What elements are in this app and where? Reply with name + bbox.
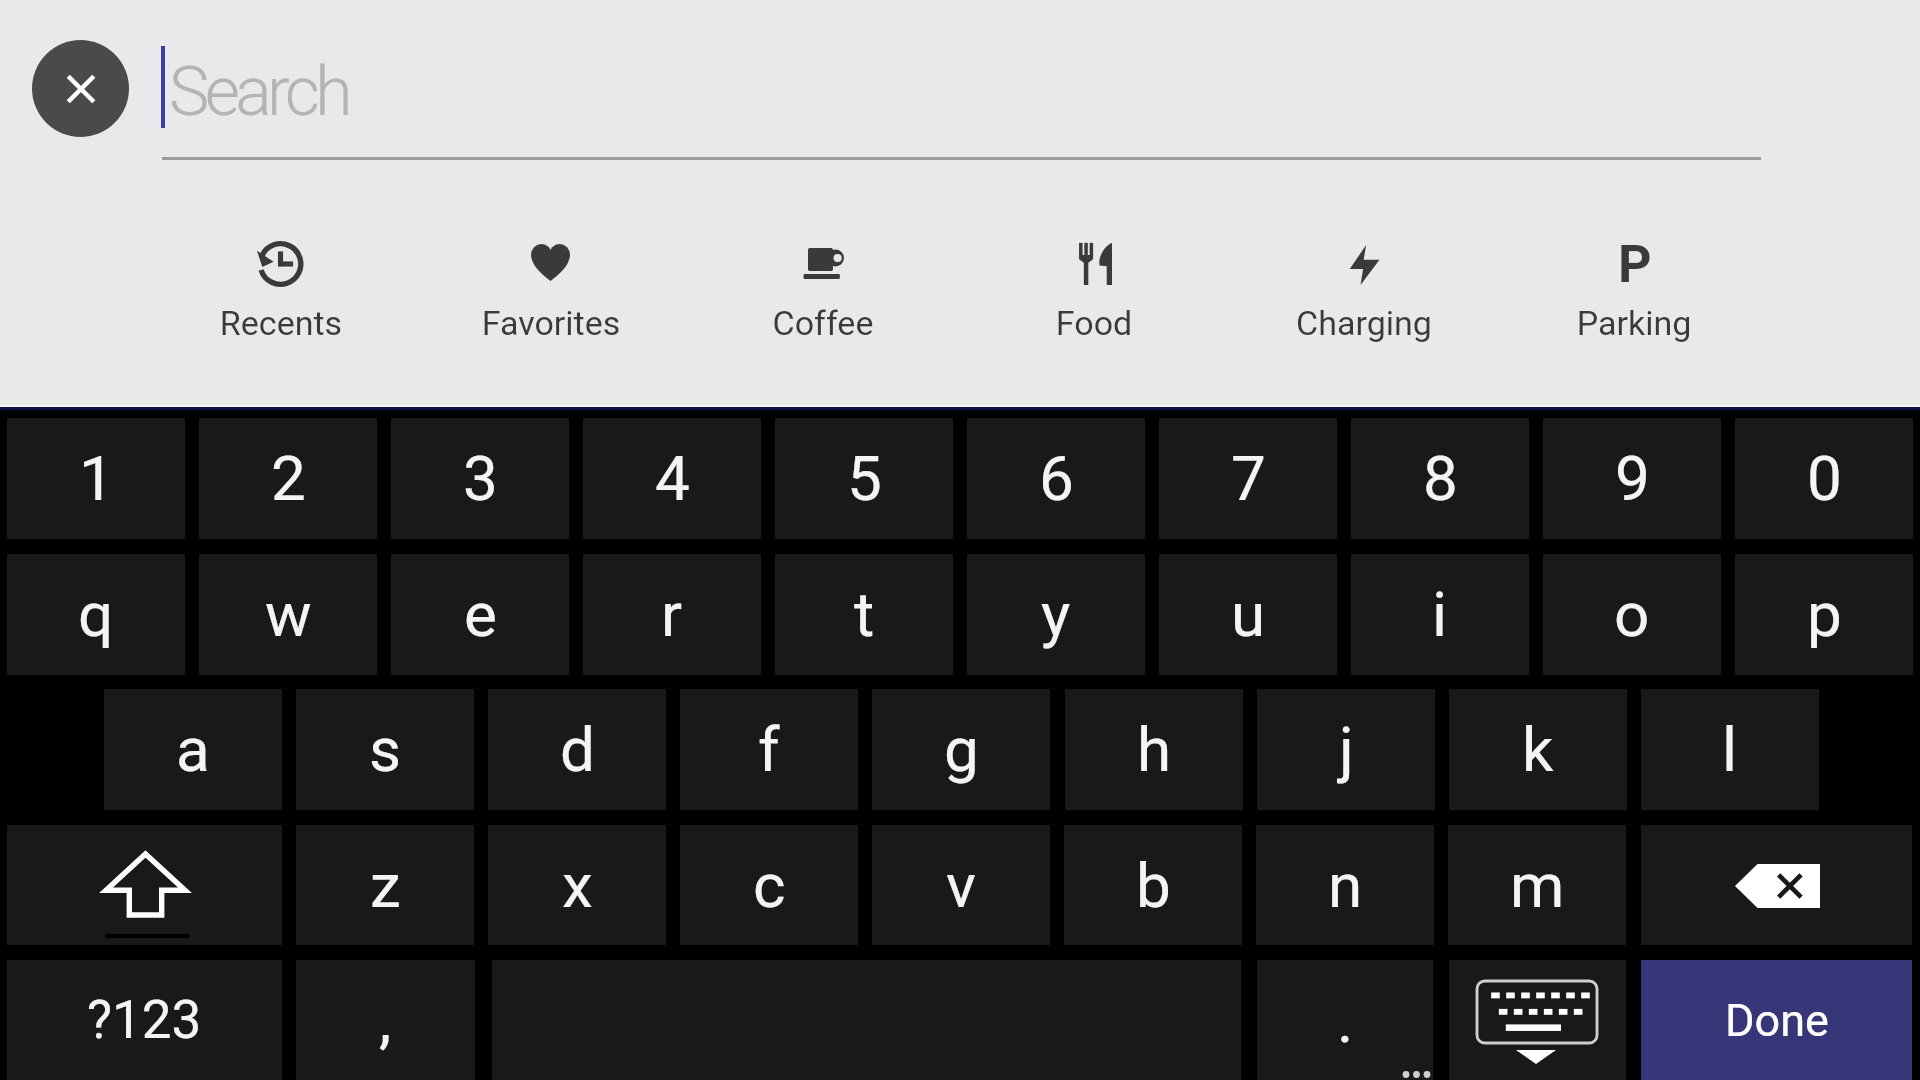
button[interactable]: n <box>1256 825 1434 945</box>
staticText: f <box>758 713 780 786</box>
button[interactable]: , <box>296 960 475 1080</box>
staticText: b <box>1136 849 1171 922</box>
staticText: i <box>1432 578 1448 651</box>
button[interactable]: f <box>680 689 858 810</box>
staticText: 6 <box>1039 442 1074 515</box>
staticText: n <box>1328 849 1363 922</box>
staticText: Favorites <box>421 303 681 343</box>
staticText: . <box>1337 984 1354 1057</box>
button[interactable]: v <box>872 825 1050 945</box>
staticText: w <box>265 578 312 651</box>
staticText: k <box>1522 713 1554 786</box>
button[interactable]: 9 <box>1543 418 1721 539</box>
button[interactable]: c <box>680 825 858 945</box>
button[interactable]: P <box>1504 233 1764 351</box>
staticText: P <box>1618 234 1652 282</box>
button[interactable]: y <box>967 554 1145 675</box>
button[interactable]: Backspace <box>1641 825 1912 945</box>
staticText: a <box>176 713 210 786</box>
staticText: Coffee <box>693 303 953 343</box>
button[interactable]: ?123 <box>7 960 282 1080</box>
button[interactable]: Favorites <box>421 233 681 351</box>
staticText: Food <box>964 303 1224 343</box>
button[interactable]: u <box>1159 554 1337 675</box>
staticText: r <box>661 578 683 651</box>
button[interactable]: 4 <box>583 418 761 539</box>
staticText: h <box>1137 713 1172 786</box>
button[interactable]: 2 <box>199 418 377 539</box>
button[interactable]: Hide keyboard <box>1449 960 1626 1080</box>
staticText: y <box>1041 578 1071 651</box>
button[interactable]: Done <box>1641 960 1912 1080</box>
staticText: c <box>753 849 786 922</box>
button[interactable]: i <box>1351 554 1529 675</box>
button[interactable]: o <box>1543 554 1721 675</box>
button[interactable]: d <box>488 689 666 810</box>
button[interactable]: Close search <box>32 40 129 137</box>
button[interactable]: Coffee <box>693 233 953 351</box>
button[interactable]: x <box>488 825 666 945</box>
button[interactable]: z <box>296 825 474 945</box>
staticText: Search <box>169 52 348 132</box>
staticText: q <box>78 578 114 651</box>
button[interactable]: . <box>1257 960 1433 1080</box>
button[interactable]: q <box>7 554 185 675</box>
staticText: v <box>946 849 977 922</box>
staticText: o <box>1614 578 1650 651</box>
staticText: 4 <box>655 442 690 515</box>
staticText: g <box>944 713 979 786</box>
button[interactable]: h <box>1065 689 1243 810</box>
button[interactable]: e <box>391 554 569 675</box>
staticText: 3 <box>463 442 498 515</box>
button[interactable]: Food <box>964 233 1224 351</box>
button[interactable]: w <box>199 554 377 675</box>
staticText: e <box>464 578 497 651</box>
staticText: 9 <box>1615 442 1650 515</box>
staticText: 2 <box>271 442 306 515</box>
staticText: l <box>1722 713 1738 786</box>
staticText: x <box>562 849 593 922</box>
button[interactable]: 1 <box>7 418 185 539</box>
staticText: u <box>1231 578 1266 651</box>
button[interactable]: a <box>104 689 282 810</box>
button[interactable]: g <box>872 689 1050 810</box>
button[interactable]: r <box>583 554 761 675</box>
button[interactable]: 7 <box>1159 418 1337 539</box>
staticText: m <box>1510 849 1565 922</box>
staticText: Done <box>1725 994 1829 1047</box>
staticText: d <box>560 713 595 786</box>
button[interactable]: Charging <box>1234 233 1494 351</box>
button[interactable]: 5 <box>775 418 953 539</box>
staticText: 8 <box>1423 442 1458 515</box>
staticText: z <box>370 849 401 922</box>
staticText: Recents <box>151 303 411 343</box>
staticText: Charging <box>1234 303 1494 343</box>
button[interactable]: p <box>1735 554 1913 675</box>
button[interactable]: j <box>1257 689 1435 810</box>
button[interactable]: s <box>296 689 474 810</box>
staticText: t <box>854 578 875 651</box>
staticText: ?123 <box>87 989 202 1051</box>
button[interactable]: Shift <box>7 825 282 945</box>
staticText: Parking <box>1504 303 1764 343</box>
staticText: 0 <box>1807 442 1842 515</box>
staticText: , <box>379 984 392 1057</box>
button[interactable]: k <box>1449 689 1627 810</box>
button[interactable]: t <box>775 554 953 675</box>
button[interactable]: b <box>1064 825 1242 945</box>
button[interactable]: l <box>1641 689 1819 810</box>
staticText: s <box>369 713 401 786</box>
button[interactable]: 6 <box>967 418 1145 539</box>
button[interactable]: 3 <box>391 418 569 539</box>
staticText: j <box>1339 713 1354 786</box>
button[interactable]: Recents <box>151 233 411 351</box>
button[interactable]: 0 <box>1735 418 1913 539</box>
staticText: p <box>1807 578 1842 651</box>
staticText: 1 <box>79 442 114 515</box>
button[interactable]: 8 <box>1351 418 1529 539</box>
staticText: 7 <box>1231 442 1266 515</box>
button[interactable]: m <box>1448 825 1626 945</box>
staticText: 5 <box>847 442 882 515</box>
